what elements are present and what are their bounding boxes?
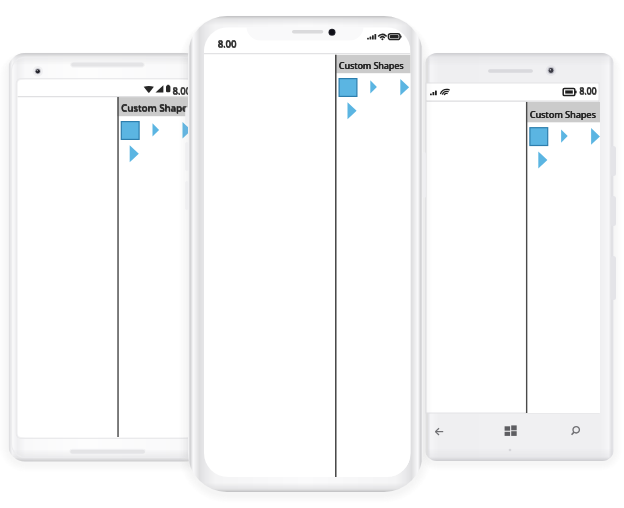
button[interactable]: Custom Shapes cross-platform preview bbox=[0, 0, 624, 508]
